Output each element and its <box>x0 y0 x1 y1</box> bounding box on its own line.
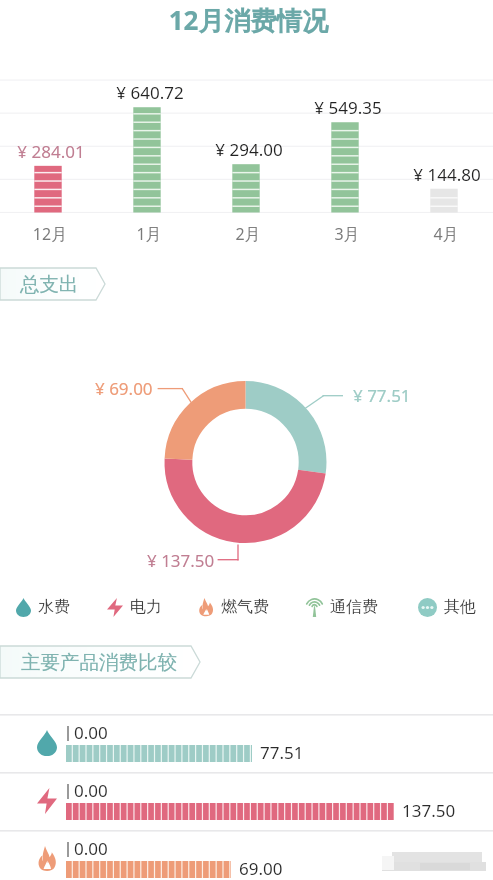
button[interactable]: 1月 640.72 <box>98 56 197 246</box>
staticText: 燃气费 <box>221 597 269 617</box>
staticText: 0.00 <box>74 837 108 860</box>
staticText: ¥ 69.00 <box>95 377 153 400</box>
staticText: 水费 <box>38 597 70 617</box>
staticText: 0.00 <box>74 779 108 802</box>
staticText: 12月 <box>0 223 105 245</box>
staticText: 电力 <box>130 597 162 617</box>
button[interactable]: 总支出 <box>0 268 105 300</box>
button[interactable]: 12月 284.01 <box>0 56 98 246</box>
staticText: 通信费 <box>330 597 378 617</box>
button[interactable]: 电力 <box>107 596 155 618</box>
staticText: ¥ 549.35 <box>293 96 403 119</box>
staticText: 69.00 <box>239 857 283 880</box>
button[interactable]: 燃气费 <box>198 596 262 618</box>
staticText: 3月 <box>292 223 402 245</box>
staticText: 1月 <box>94 223 204 245</box>
button[interactable]: 4月 144.8 <box>395 56 493 246</box>
staticText: ¥ 294.00 <box>194 138 304 161</box>
button[interactable]: Expense breakdown chart <box>164 381 327 544</box>
button[interactable]: 其他 <box>418 596 469 618</box>
button[interactable]: 水费 <box>16 596 63 618</box>
staticText: 总支出 <box>20 272 79 297</box>
staticText: 12月消费情况 <box>2 2 493 38</box>
staticText: ¥ 77.51 <box>353 384 411 407</box>
staticText: ¥ 640.72 <box>95 81 205 104</box>
staticText: 4月 <box>391 223 493 245</box>
staticText: 77.51 <box>260 741 304 764</box>
staticText: 2月 <box>193 223 303 245</box>
button[interactable]: 3月 549.35 <box>296 56 395 246</box>
button[interactable]: 0.00 <box>0 772 493 830</box>
staticText: ¥ 137.50 <box>147 549 215 572</box>
staticText: 其他 <box>444 597 476 617</box>
staticText: 137.50 <box>402 799 456 822</box>
staticText: 0.00 <box>74 721 108 744</box>
staticText: 主要产品消费比较 <box>21 650 177 675</box>
staticText: ¥ 144.80 <box>392 163 493 186</box>
button[interactable]: 2月 294.0 <box>197 56 296 246</box>
button[interactable]: 0.00 <box>0 830 493 880</box>
button[interactable]: 0.00 <box>0 714 493 772</box>
button[interactable]: 主要产品消费比较 <box>0 646 200 678</box>
staticText: ¥ 284.01 <box>0 140 106 163</box>
button[interactable]: 通信费 <box>306 596 371 618</box>
